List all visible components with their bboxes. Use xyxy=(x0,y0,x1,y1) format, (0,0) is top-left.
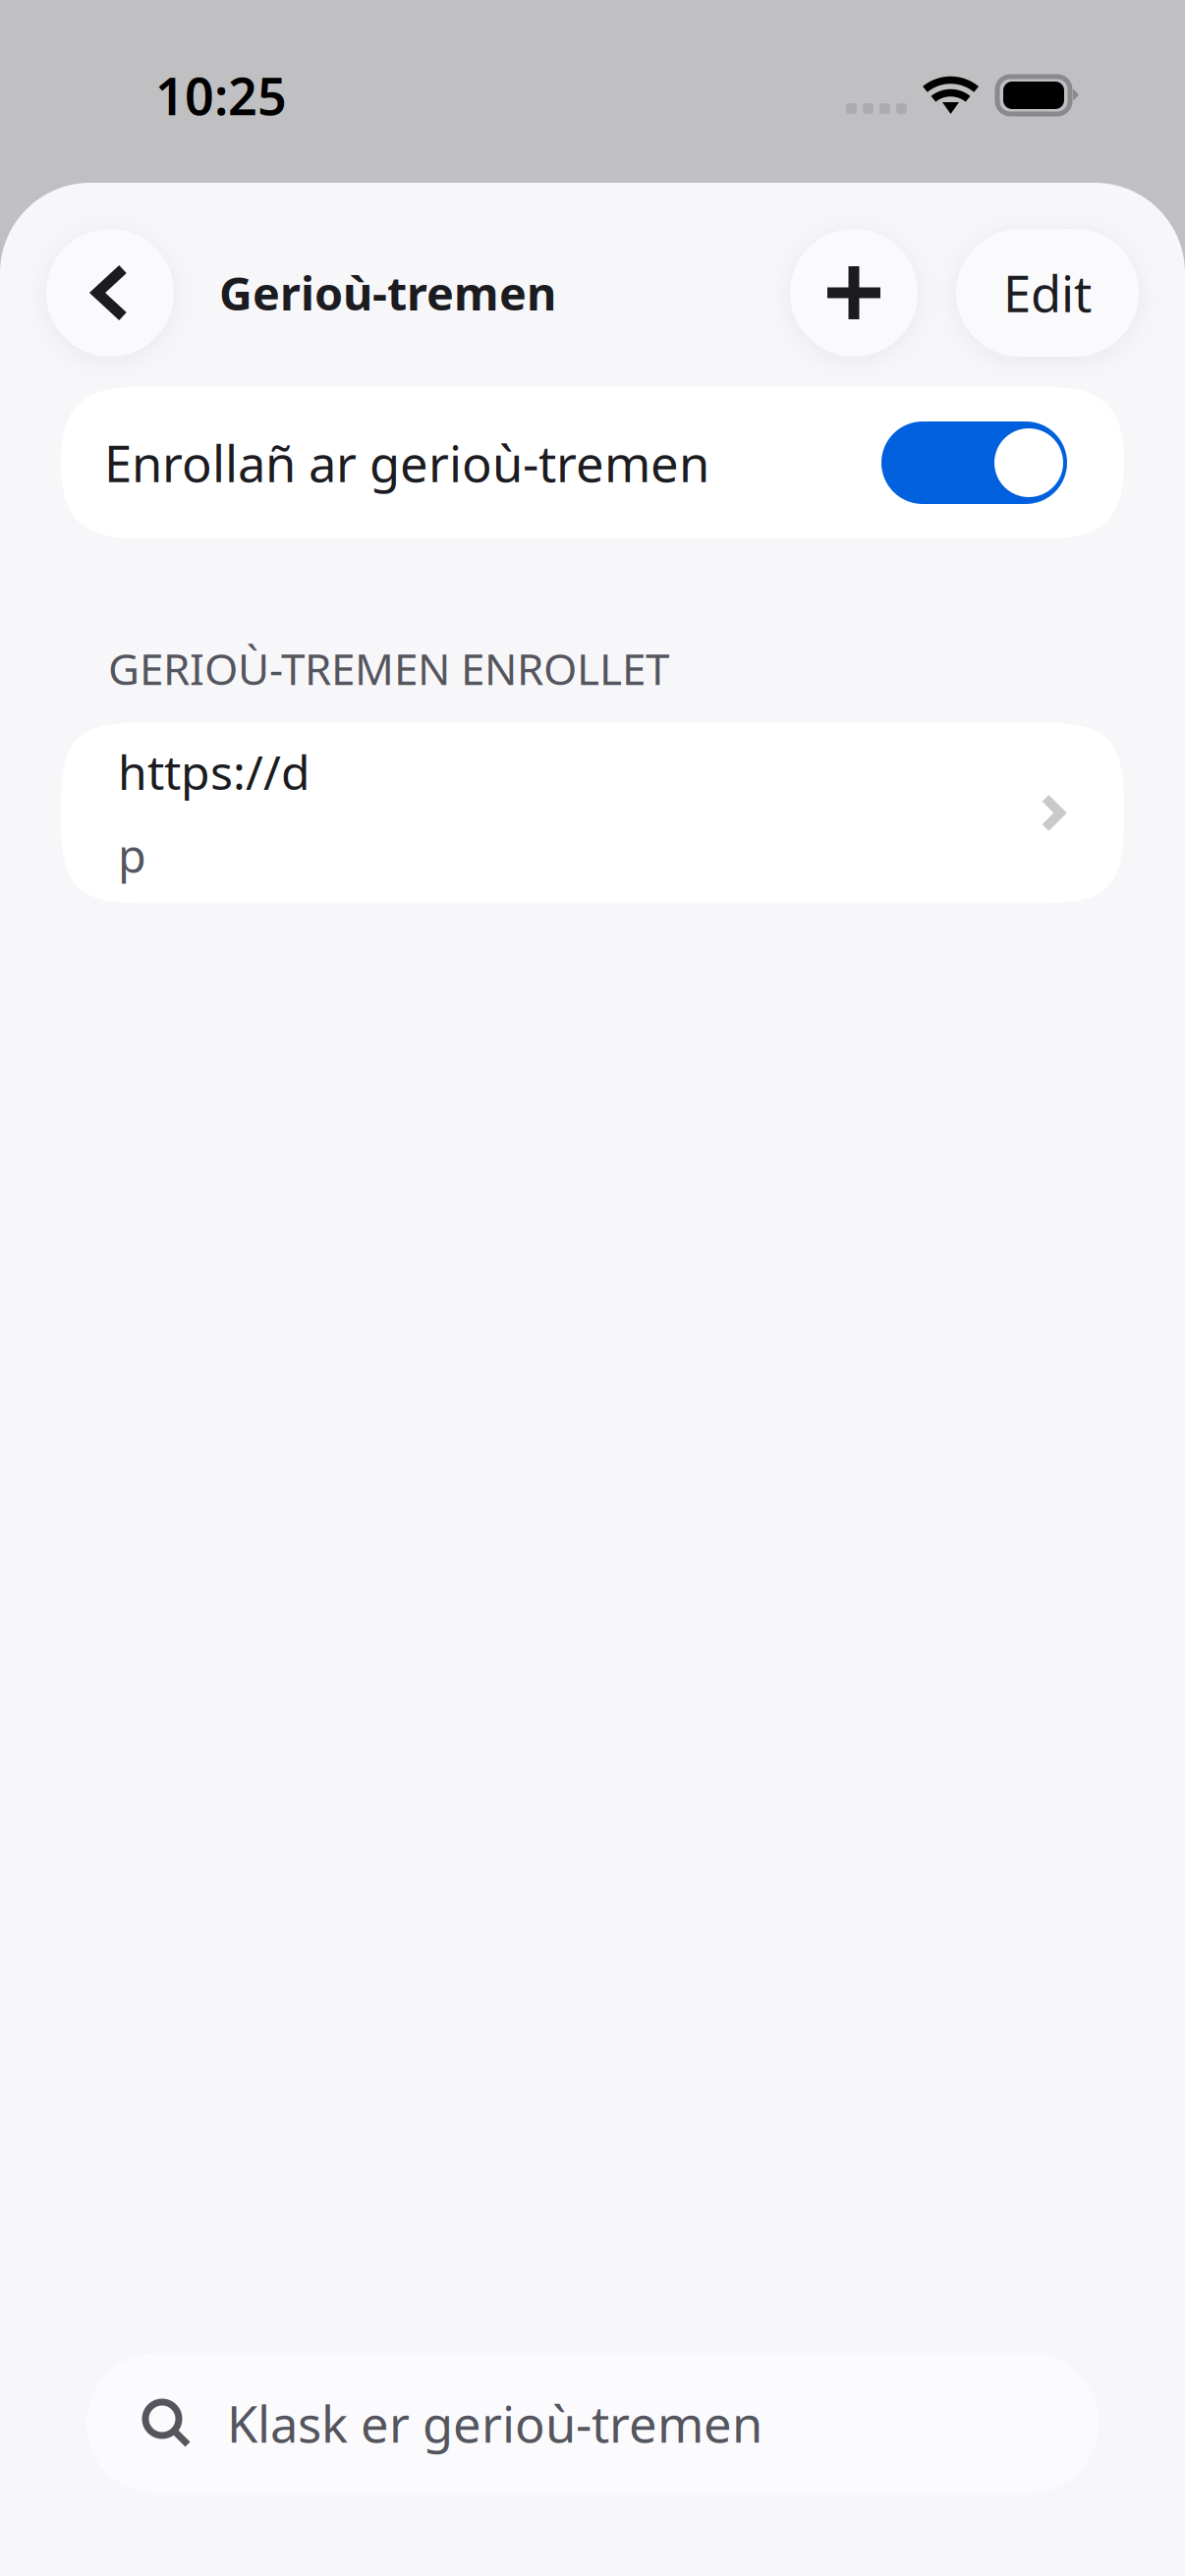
staticText: GERIOÙ-TREMEN ENROLLET xyxy=(108,640,669,697)
button[interactable]: Add new password xyxy=(790,229,918,357)
staticText: 10:25 xyxy=(155,61,287,129)
staticText: Gerioù-tremen xyxy=(219,262,556,323)
button[interactable]: Back xyxy=(46,229,174,357)
button[interactable]: Enrollañ ar gerioù-tremen xyxy=(61,387,1124,538)
button[interactable]: Edit xyxy=(956,229,1139,357)
button[interactable]: Klask er gerioù-tremen xyxy=(86,2353,1099,2493)
button[interactable]: https://d xyxy=(61,722,1124,903)
staticText: p xyxy=(118,825,146,885)
staticText: Edit xyxy=(1003,260,1092,326)
staticText: Enrollañ ar gerioù-tremen xyxy=(104,430,709,496)
staticText: https://d xyxy=(118,740,310,803)
staticText: Klask er gerioù-tremen xyxy=(227,2390,762,2456)
